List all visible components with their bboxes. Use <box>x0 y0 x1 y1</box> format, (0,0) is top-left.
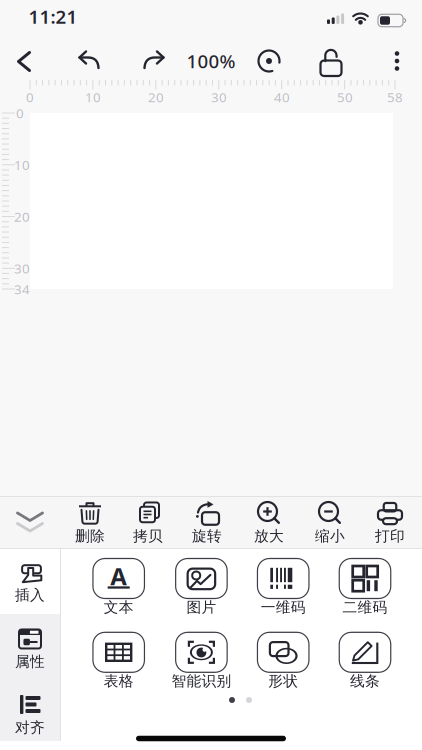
button[interactable]: Undo <box>69 51 109 73</box>
staticText: 11:21 <box>28 4 77 29</box>
button[interactable] <box>339 558 391 598</box>
button[interactable] <box>176 632 227 672</box>
button[interactable]: More <box>389 49 405 73</box>
staticText: 一维码 <box>261 598 306 616</box>
staticText: 40 <box>274 88 290 106</box>
staticText: 旋转 <box>192 527 222 545</box>
staticText: 图片 <box>186 598 216 616</box>
staticText: 30 <box>14 259 30 277</box>
button[interactable]: 100% <box>186 49 235 73</box>
button[interactable]: 对齐 <box>1 684 59 746</box>
button[interactable]: 缩小 <box>304 500 356 546</box>
button[interactable]: 删除 <box>64 500 116 546</box>
staticText: 拷贝 <box>133 527 163 545</box>
staticText: 34 <box>14 280 30 298</box>
button[interactable]: A <box>93 558 144 598</box>
staticText: 打印 <box>375 527 405 545</box>
button[interactable] <box>339 632 391 672</box>
button[interactable]: 插入 <box>1 551 59 613</box>
button[interactable]: Unlock <box>315 46 347 76</box>
staticText: 100% <box>186 49 235 73</box>
staticText: 形状 <box>268 672 298 690</box>
staticText: 二维码 <box>342 598 387 616</box>
button[interactable] <box>93 632 144 672</box>
staticText: 缩小 <box>315 527 345 545</box>
staticText: 30 <box>211 88 227 106</box>
staticText: 文本 <box>104 598 134 616</box>
button[interactable]: 拷贝 <box>122 500 174 546</box>
button[interactable]: 打印 <box>364 500 416 546</box>
staticText: 50 <box>337 88 353 106</box>
button[interactable] <box>176 558 227 598</box>
button[interactable]: 旋转 <box>181 500 233 546</box>
button[interactable]: 属性 <box>1 618 59 680</box>
staticText: 10 <box>14 156 30 174</box>
staticText: 20 <box>148 88 164 106</box>
button[interactable]: Redo <box>134 51 174 73</box>
button[interactable] <box>257 632 309 672</box>
button[interactable]: Rotate view <box>254 46 284 76</box>
staticText: 放大 <box>254 527 284 545</box>
staticText: 0 <box>16 104 24 122</box>
staticText: 删除 <box>75 527 105 545</box>
staticText: 插入 <box>15 586 45 604</box>
staticText: 10 <box>85 88 101 106</box>
staticText: 智能识别 <box>171 672 231 690</box>
staticText: 对齐 <box>15 718 45 736</box>
button[interactable]: 放大 <box>243 500 295 546</box>
staticText: 属性 <box>15 652 45 670</box>
staticText: 58 <box>387 88 403 106</box>
button[interactable]: Collapse <box>15 508 45 535</box>
staticText: 20 <box>14 208 30 225</box>
button[interactable] <box>257 558 309 598</box>
staticText: 表格 <box>104 672 134 690</box>
staticText: 0 <box>26 88 34 106</box>
staticText: 线条 <box>350 672 380 690</box>
staticText: A <box>110 560 127 592</box>
button[interactable]: Back <box>4 41 44 81</box>
